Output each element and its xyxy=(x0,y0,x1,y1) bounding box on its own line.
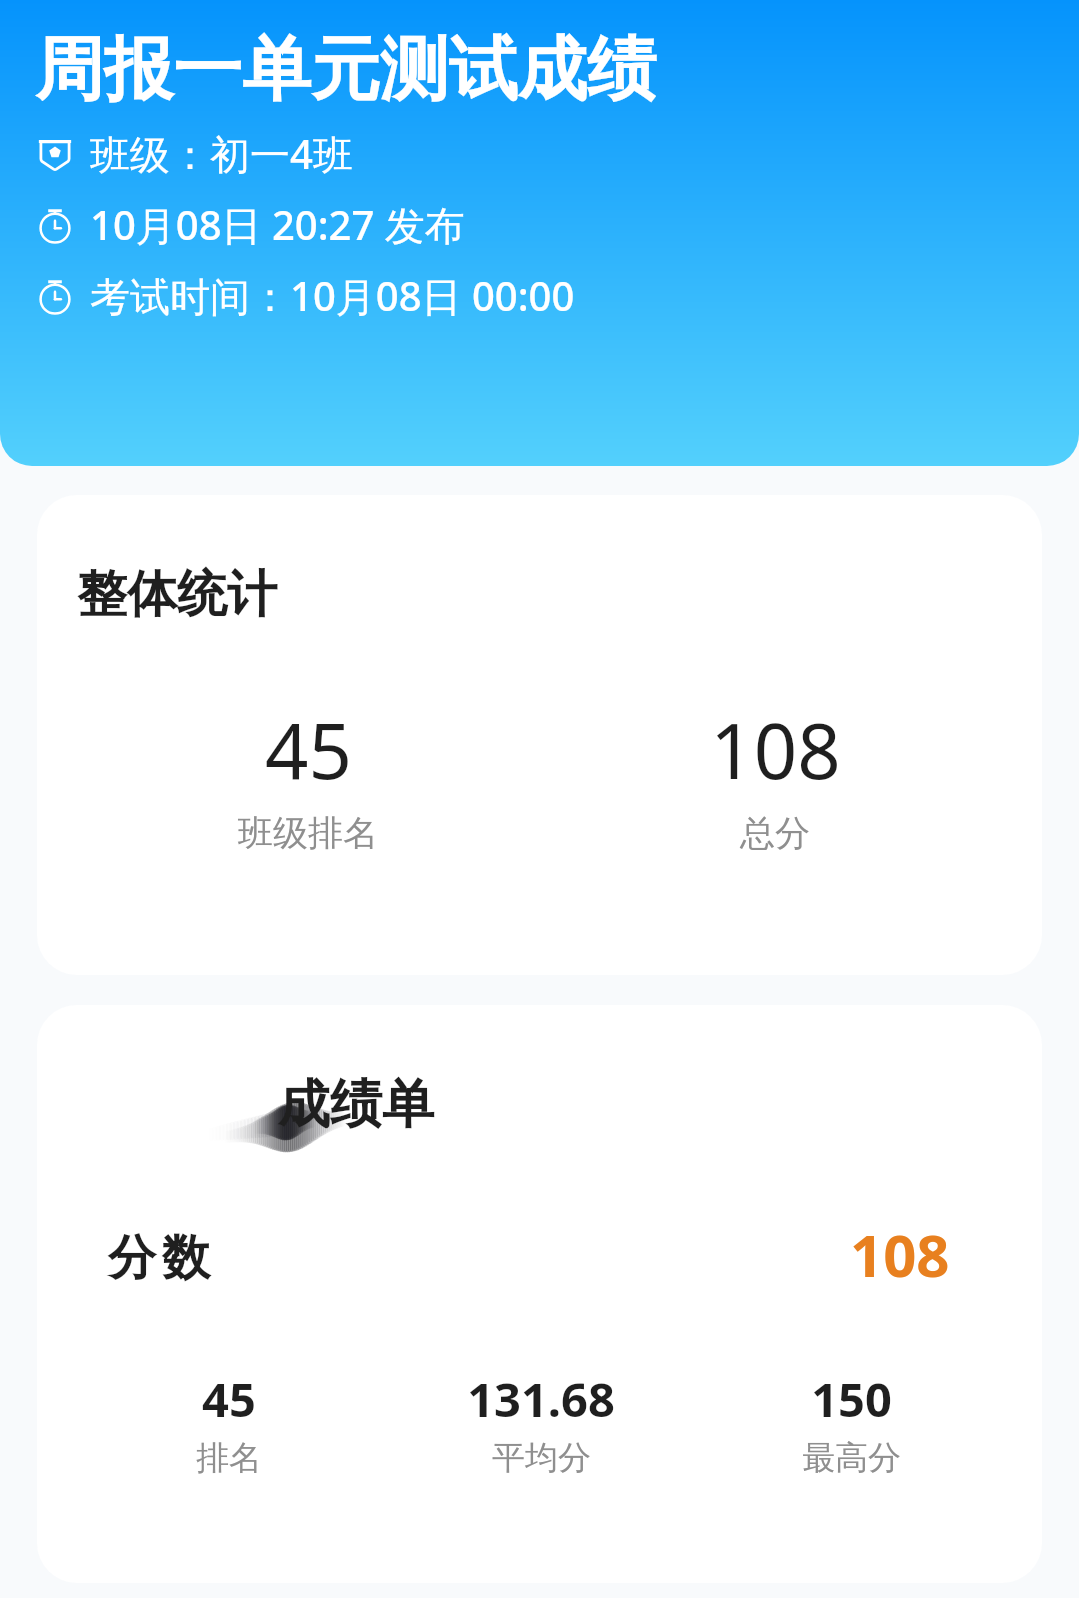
staticText: 考试时间：10月08日 00:00 xyxy=(90,268,575,323)
staticText: 分 xyxy=(108,1228,156,1288)
staticText: 班级排名 xyxy=(238,811,378,855)
staticText: 131.68 xyxy=(467,1367,615,1431)
button[interactable]: 成绩单 xyxy=(37,1005,1042,1583)
other: 考试时间 xyxy=(36,277,74,315)
staticText: 10月08日 20:27 发布 xyxy=(90,197,465,252)
staticText: 平均分 xyxy=(492,1437,591,1479)
button[interactable]: 班级 xyxy=(36,126,353,181)
button[interactable]: 108 xyxy=(575,698,975,855)
button[interactable]: 发布时间 xyxy=(36,197,465,252)
other: 发布时间 xyxy=(36,206,74,244)
other: 班级 xyxy=(36,135,74,173)
staticText: 108 xyxy=(850,1215,950,1294)
staticText: 108 xyxy=(710,698,841,802)
staticText: 数 xyxy=(162,1228,210,1288)
staticText: 成绩单 xyxy=(278,1072,434,1138)
staticText: 班级：初一4班 xyxy=(90,126,353,181)
staticText: 最高分 xyxy=(802,1437,901,1479)
button[interactable]: 分 xyxy=(37,1218,1042,1297)
staticText: 排名 xyxy=(196,1437,262,1479)
button[interactable]: 45 xyxy=(108,698,508,855)
staticText: 整体统计 xyxy=(77,563,277,626)
button[interactable]: 整体统计 xyxy=(37,495,1042,975)
button[interactable]: 131.68 xyxy=(341,1367,741,1479)
staticText: 45 xyxy=(202,1367,256,1431)
staticText: 总分 xyxy=(740,811,810,855)
button[interactable]: 考试时间 xyxy=(36,268,575,323)
button[interactable]: 45 xyxy=(37,1367,429,1479)
staticText: 周报一单元测试成绩 xyxy=(35,27,656,114)
staticText: 150 xyxy=(811,1367,892,1431)
button[interactable]: 150 xyxy=(651,1367,1042,1479)
staticText: 45 xyxy=(265,698,352,802)
